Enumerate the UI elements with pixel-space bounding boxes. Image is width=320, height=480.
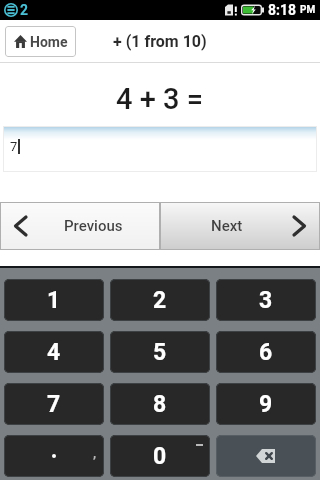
staticText: 9 — [259, 391, 273, 418]
staticText: 4 — [47, 339, 61, 366]
button[interactable]: 6 — [216, 331, 316, 373]
staticText: 2 — [20, 2, 29, 18]
staticText: , — [93, 446, 97, 461]
staticText: 2 — [153, 287, 167, 314]
button[interactable]: 9 — [216, 383, 316, 425]
staticText: Previous — [64, 217, 123, 235]
button[interactable]: Previous — [0, 202, 160, 250]
staticText: 1 — [47, 287, 61, 314]
button[interactable]: 5 — [110, 331, 210, 373]
button[interactable]: 7 — [4, 383, 104, 425]
staticText: 3 — [259, 287, 273, 314]
staticText: 7 — [10, 139, 18, 154]
button[interactable]: , — [4, 435, 104, 477]
button[interactable]: 7 — [3, 126, 317, 172]
staticText: PM — [300, 4, 316, 16]
staticText: 8:18 — [268, 2, 300, 18]
staticText: 7 — [47, 391, 61, 418]
staticText: 6 — [259, 339, 273, 366]
button[interactable] — [216, 435, 316, 477]
button[interactable]: 2 — [110, 279, 210, 321]
staticText: 4 + 3 = — [116, 82, 204, 116]
staticText: 8 — [153, 391, 167, 418]
staticText: + (1 from 10) — [113, 32, 207, 51]
staticText: 0 — [153, 443, 167, 470]
button[interactable]: 1 — [4, 279, 104, 321]
staticText: 5 — [153, 339, 167, 366]
staticText: Next — [211, 217, 243, 235]
button[interactable]: 0 — [110, 435, 210, 477]
button[interactable]: Next — [160, 202, 320, 250]
staticText: Home — [30, 34, 68, 50]
button[interactable]: 8 — [110, 383, 210, 425]
button[interactable]: 3 — [216, 279, 316, 321]
button[interactable]: Home — [5, 26, 76, 57]
button[interactable]: 4 — [4, 331, 104, 373]
